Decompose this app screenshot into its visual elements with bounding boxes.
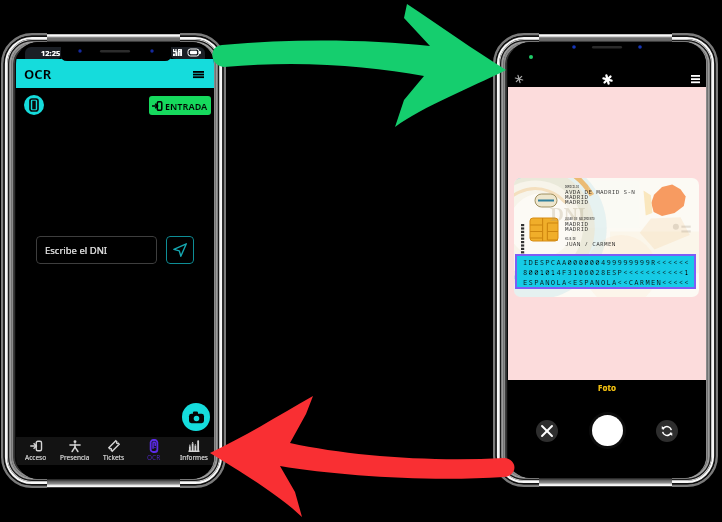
staticText: OCR xyxy=(24,65,52,83)
staticText: HIJA DE xyxy=(565,237,576,241)
button[interactable]: Acceso xyxy=(16,437,55,465)
staticText: MADRID xyxy=(565,193,589,201)
button[interactable]: Take photo xyxy=(589,412,626,449)
button[interactable]: Switch camera xyxy=(656,420,678,442)
button[interactable]: Escribe el DNI xyxy=(36,236,157,264)
button[interactable]: Device mode xyxy=(24,95,44,115)
staticText: ENTRADA xyxy=(165,100,208,112)
staticText: IDESPCAA000000499999999R<<<<<< xyxy=(523,257,690,267)
staticText: JUAN / CARMEN xyxy=(565,240,616,248)
button[interactable]: OCR xyxy=(134,437,174,465)
button[interactable]: Close camera xyxy=(536,420,558,442)
staticText: LUGAR DE NACIMIENTO xyxy=(565,217,595,221)
staticText: Acceso xyxy=(25,453,47,462)
staticText: DOMICILIO xyxy=(565,185,580,189)
staticText: 8001014F3106028ESP<<<<<<<<<<<1 xyxy=(523,267,690,277)
button[interactable]: Informes xyxy=(174,437,214,465)
staticText: Escribe el DNI xyxy=(45,244,108,257)
staticText: DNI xyxy=(550,202,586,227)
button[interactable]: OCR xyxy=(16,59,214,88)
button[interactable]: Open camera xyxy=(182,403,210,431)
button[interactable]: Filters xyxy=(599,71,615,87)
staticText: ESPANOLA<ESPANOLA<<CARMEN<<<<< xyxy=(523,277,690,287)
staticText: OCR xyxy=(147,453,161,462)
staticText: MADRID xyxy=(565,220,589,228)
button[interactable]: Presencia xyxy=(55,437,94,465)
staticText: Presencia xyxy=(60,453,90,462)
staticText: Tickets xyxy=(103,453,125,462)
staticText: MADRID xyxy=(565,225,589,233)
staticText: MADRID xyxy=(565,198,589,206)
staticText: Foto xyxy=(508,382,706,393)
button[interactable]: Send xyxy=(166,236,194,264)
staticText: 12:25 xyxy=(41,48,61,58)
staticText: Informes xyxy=(180,453,208,462)
button[interactable]: Open menu xyxy=(188,64,208,84)
button[interactable]: Camera settings xyxy=(687,71,703,87)
button[interactable]: ENTRADA xyxy=(149,96,211,115)
button[interactable]: Flash xyxy=(511,71,527,87)
staticText: AVDA DE MADRID S-N xyxy=(565,188,636,196)
button[interactable]: Tickets xyxy=(94,437,134,465)
